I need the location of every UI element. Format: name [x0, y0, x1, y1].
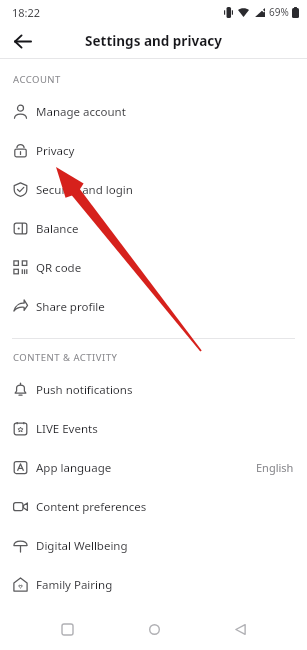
- button[interactable]: Balance: [0, 209, 307, 248]
- staticText: Push notifications: [36, 382, 133, 398]
- staticText: App language: [36, 460, 112, 476]
- staticText: ACCOUNT: [13, 73, 61, 86]
- button[interactable]: Share profile: [0, 287, 307, 326]
- staticText: Privacy: [36, 143, 75, 159]
- staticText: Balance: [36, 221, 79, 237]
- staticText: Share profile: [36, 299, 105, 315]
- button[interactable]: LIVE Events: [0, 409, 307, 448]
- button[interactable]: App language: [0, 448, 307, 487]
- staticText: Content preferences: [36, 499, 147, 515]
- button[interactable]: Privacy: [0, 131, 307, 170]
- button[interactable]: Home: [134, 609, 174, 649]
- button[interactable]: QR code: [0, 248, 307, 287]
- staticText: Security and login: [36, 182, 133, 198]
- button[interactable]: Digital Wellbeing: [0, 526, 307, 565]
- staticText: 18:22: [12, 5, 41, 20]
- button[interactable]: Content preferences: [0, 487, 307, 526]
- button[interactable]: Manage account: [0, 92, 307, 131]
- staticText: Manage account: [36, 104, 126, 120]
- staticText: QR code: [36, 260, 82, 276]
- staticText: LIVE Events: [36, 421, 98, 437]
- button[interactable]: Recents: [47, 609, 87, 649]
- staticText: Digital Wellbeing: [36, 538, 128, 554]
- button[interactable]: Back: [220, 609, 260, 649]
- button[interactable]: Security and login: [0, 170, 307, 209]
- button[interactable]: Family Pairing: [0, 565, 307, 604]
- button[interactable]: Push notifications: [0, 370, 307, 409]
- staticText: Settings and privacy: [85, 32, 222, 50]
- staticText: English: [256, 460, 294, 475]
- staticText: CONTENT & ACTIVITY: [13, 351, 118, 364]
- staticText: Family Pairing: [36, 577, 113, 593]
- button[interactable]: Back: [4, 24, 40, 58]
- staticText: 69%: [269, 5, 289, 19]
